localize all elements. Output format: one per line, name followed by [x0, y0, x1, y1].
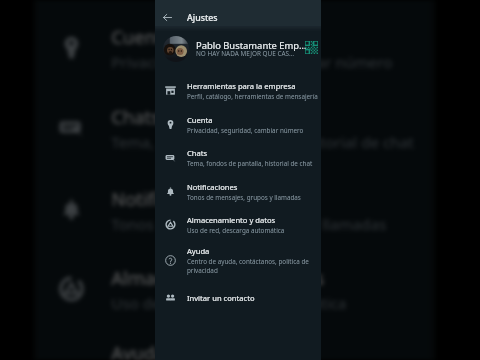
staticText: Uso de red, descarga automática	[187, 226, 285, 235]
button[interactable]: Chats	[34, 87, 435, 167]
button[interactable]: Chats	[155, 141, 321, 174]
button[interactable]: Ayuda	[155, 244, 321, 277]
staticText: Ayuda	[187, 246, 210, 256]
staticText: Tonos de mensajes, grupos y llamadas	[187, 193, 301, 202]
staticText: Notificaciones	[111, 186, 234, 210]
button[interactable]: Herramientas para la empresa	[34, 0, 435, 5]
button[interactable]: Invitar un contacto	[155, 281, 321, 314]
button[interactable]: QR code	[304, 40, 318, 54]
staticText: Privacidad, seguridad, cambiar número	[111, 51, 394, 73]
staticText: Chats	[111, 104, 162, 128]
staticText: Uso de red, descarga automática	[111, 293, 348, 314]
button[interactable]: Notificaciones	[34, 169, 435, 249]
staticText: Perfil, catálogo, herramientas de mensaj…	[187, 92, 318, 101]
staticText: Chats	[187, 148, 208, 158]
button[interactable]: Herramientas para la empresa	[155, 74, 321, 107]
staticText: Almacenamiento y datos	[111, 266, 326, 290]
staticText: Cuenta	[187, 115, 213, 125]
staticText: Invitar un contacto	[187, 293, 255, 303]
staticText: Tema, fondos de pantalla, historial de c…	[111, 131, 416, 152]
staticText: Almacenamiento y datos	[187, 215, 276, 225]
staticText: Centro de ayuda, contáctanos, política d…	[187, 257, 321, 275]
button[interactable]: Cuenta	[155, 108, 321, 141]
staticText: Ayuda	[111, 341, 167, 360]
staticText: NO HAY NADA MEJOR QUE CAS…	[196, 49, 295, 58]
button[interactable]: Ayuda	[34, 336, 435, 360]
staticText: Notificaciones	[187, 182, 238, 192]
staticText: Tema, fondos de pantalla, historial de c…	[187, 159, 313, 168]
button[interactable]: Pablo Bustamante Emp…	[155, 29, 321, 68]
staticText: Tonos de mensajes, grupos y llamadas	[111, 213, 387, 235]
button[interactable]: Back	[158, 8, 176, 26]
button[interactable]: Cuenta	[34, 8, 435, 87]
button[interactable]: Notificaciones	[155, 175, 321, 208]
staticText: Cuenta	[111, 24, 174, 49]
staticText: Herramientas para la empresa	[187, 81, 296, 91]
button[interactable]: Almacenamiento y datos	[155, 208, 321, 241]
staticText: Ajustes	[187, 12, 218, 24]
staticText: Pablo Bustamante Emp…	[196, 39, 307, 52]
staticText: Privacidad, seguridad, cambiar número	[187, 126, 304, 135]
button[interactable]: Almacenamiento y datos	[34, 249, 435, 329]
